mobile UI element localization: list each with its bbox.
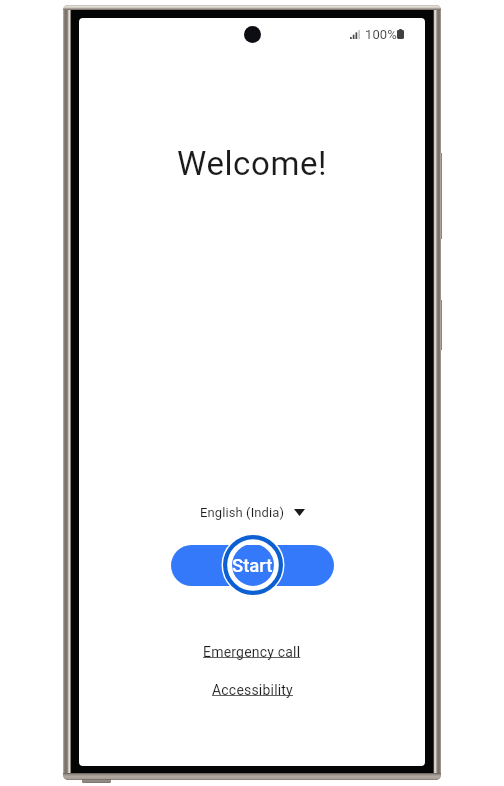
staticText: English (India) bbox=[200, 505, 285, 520]
staticText: Emergency call bbox=[203, 644, 301, 660]
staticText: Start bbox=[232, 555, 273, 577]
staticText: Welcome! bbox=[177, 144, 328, 183]
button[interactable]: Emergency call bbox=[193, 638, 311, 666]
staticText: 100% bbox=[365, 27, 397, 42]
other: Side button bbox=[440, 300, 442, 350]
other: Side button bbox=[440, 153, 442, 239]
staticText: Accessibility bbox=[212, 682, 293, 698]
button[interactable]: English (India) bbox=[190, 499, 315, 526]
button[interactable]: Accessibility bbox=[202, 676, 303, 704]
button[interactable]: Start bbox=[171, 545, 334, 586]
other: Start bbox=[223, 535, 283, 595]
